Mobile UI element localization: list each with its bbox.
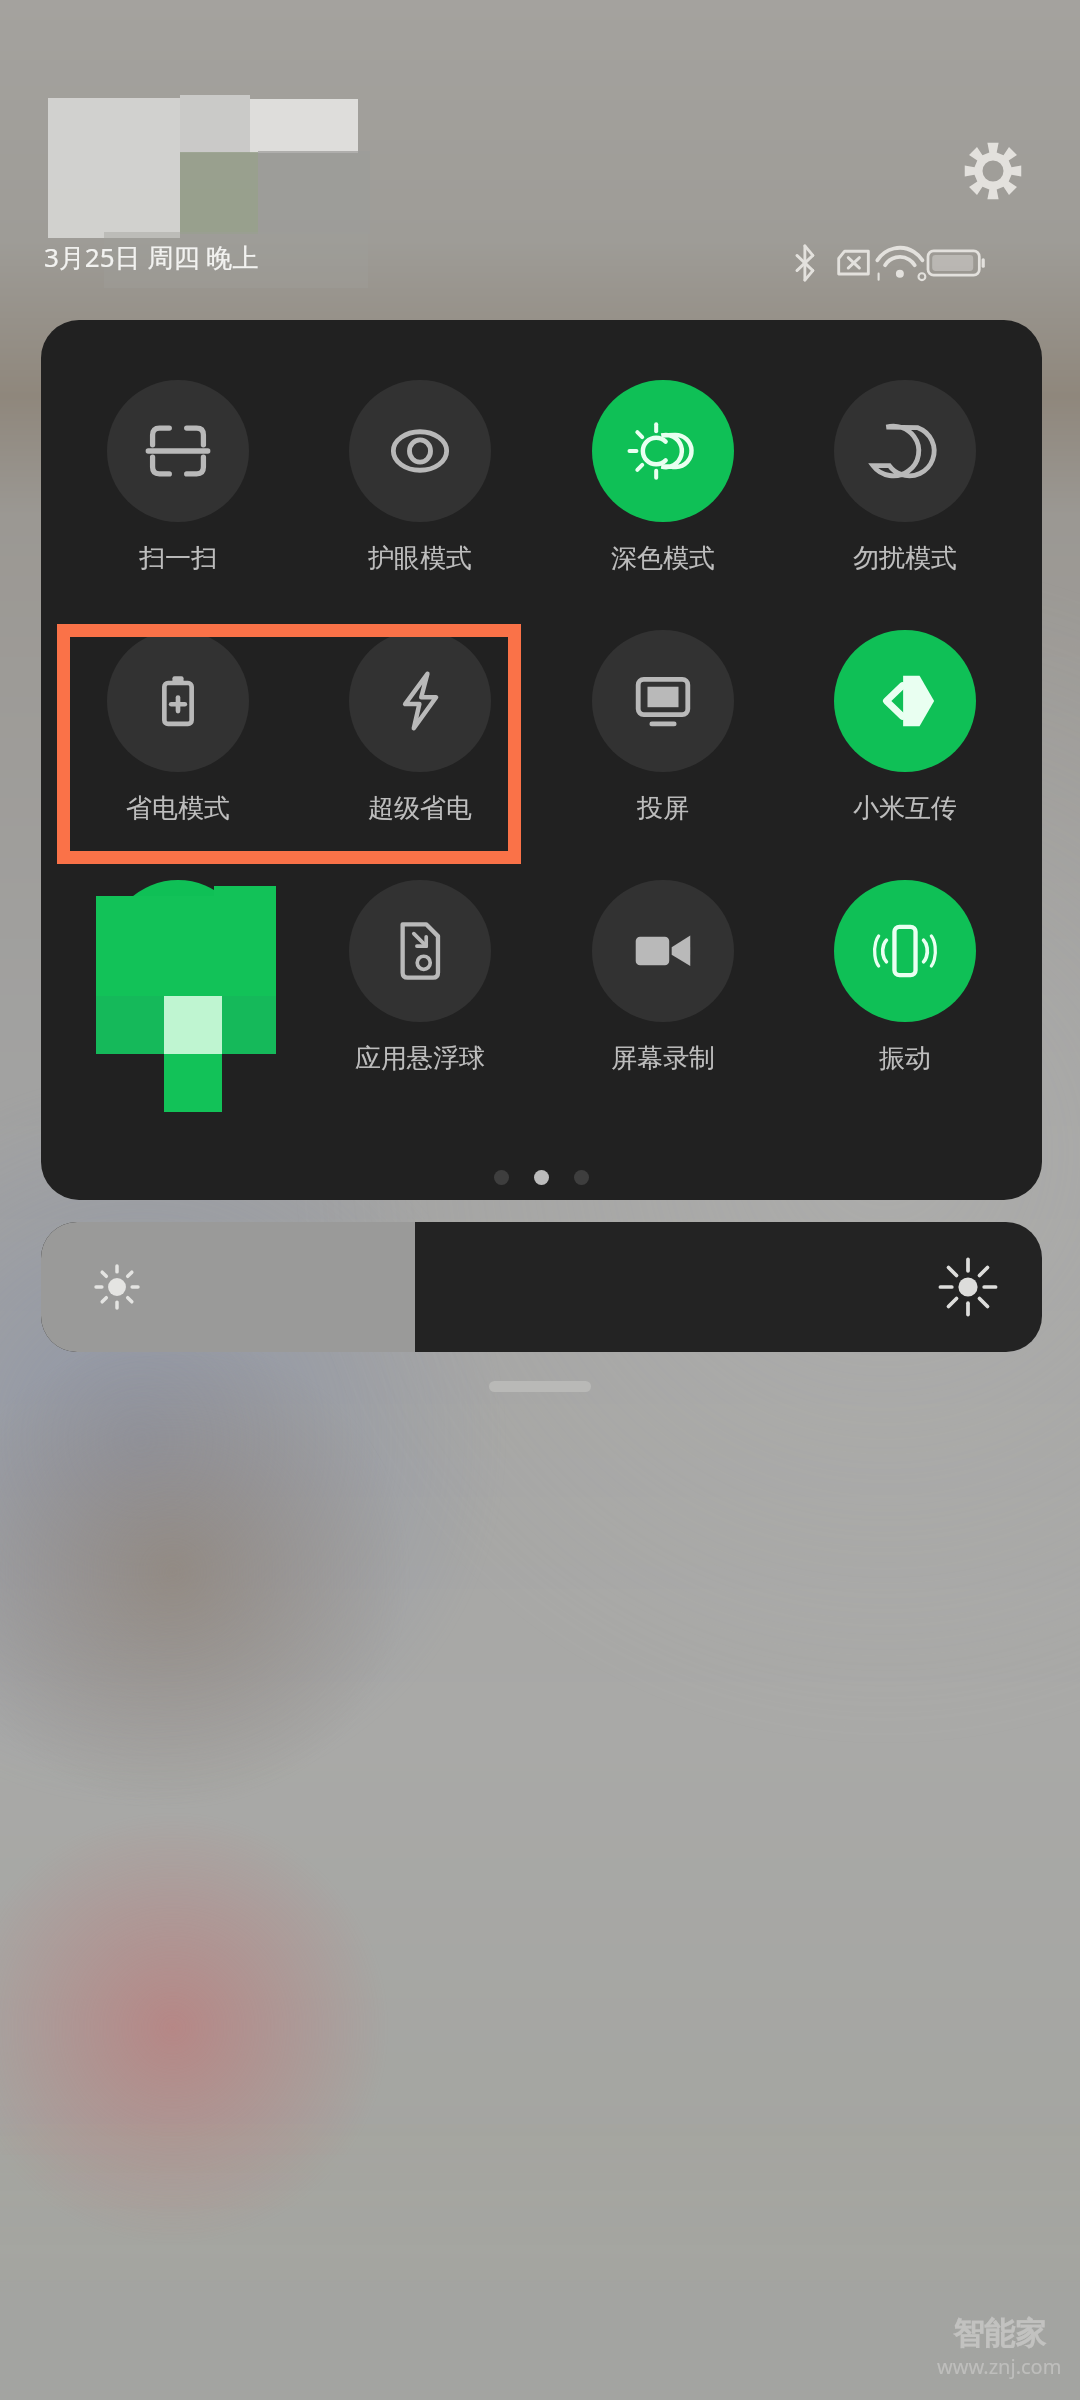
button[interactable]: 深色模式 <box>558 380 768 575</box>
button[interactable]: 护眼模式 <box>315 380 525 575</box>
button[interactable]: 屏幕录制 <box>558 880 768 1075</box>
staticText: 3月25日 周四 晚上 <box>44 239 259 275</box>
button[interactable]: 超级省电 <box>315 630 525 825</box>
button[interactable]: 灯效 <box>73 880 283 1076</box>
staticText: 深色模式 <box>611 542 715 575</box>
button[interactable]: 省电模式 <box>73 630 283 825</box>
staticText: 护眼模式 <box>368 542 472 575</box>
staticText: 扫一扫 <box>139 542 217 575</box>
staticText: 勿扰模式 <box>853 542 957 575</box>
staticText: 屏幕录制 <box>611 1042 715 1075</box>
button[interactable]: 振动 <box>800 880 1010 1075</box>
staticText: 省电模式 <box>126 792 230 825</box>
staticText: 投屏 <box>637 792 689 825</box>
staticText: www.znj.com <box>937 2353 1062 2380</box>
staticText: 振动 <box>879 1042 931 1075</box>
staticText: 超级省电 <box>368 792 472 825</box>
button[interactable]: Brightness <box>41 1222 1042 1352</box>
staticText: 小米互传 <box>853 792 957 825</box>
button[interactable]: 扫一扫 <box>73 380 283 575</box>
staticText: 应用悬浮球 <box>355 1042 485 1075</box>
button[interactable]: Settings <box>963 141 1023 201</box>
button[interactable]: 勿扰模式 <box>800 380 1010 575</box>
button[interactable]: 投屏 <box>558 630 768 825</box>
staticText: 智能家 <box>953 2314 1046 2353</box>
button[interactable]: 应用悬浮球 <box>315 880 525 1075</box>
button[interactable]: 小米互传 <box>800 630 1010 825</box>
